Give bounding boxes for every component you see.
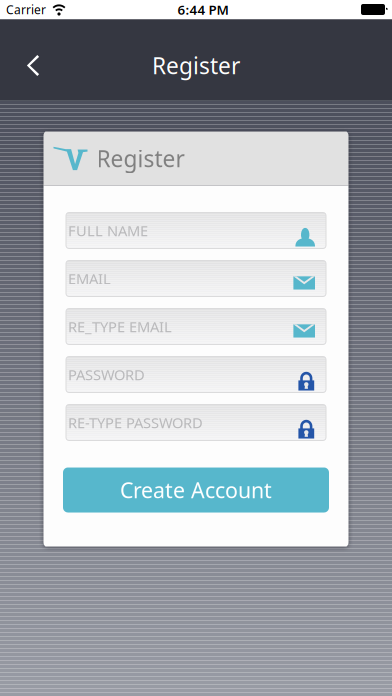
- staticText: EMAIL: [68, 269, 111, 288]
- button[interactable]: Back: [0, 43, 52, 87]
- staticText: Create Account: [120, 476, 272, 504]
- staticText: Register: [152, 50, 240, 80]
- staticText: Register: [96, 143, 184, 173]
- staticText: FULL NAME: [68, 221, 148, 240]
- staticText: RE_TYPE EMAIL: [68, 317, 172, 336]
- button[interactable]: RE-TYPE PASSWORD: [66, 404, 326, 440]
- button[interactable]: RE_TYPE EMAIL: [66, 308, 326, 344]
- staticText: Carrier: [6, 1, 46, 17]
- staticText: 6:44 PM: [177, 1, 228, 18]
- button[interactable]: EMAIL: [66, 260, 326, 296]
- button[interactable]: Create Account: [63, 467, 329, 512]
- staticText: RE-TYPE PASSWORD: [68, 413, 203, 432]
- button[interactable]: FULL NAME: [66, 212, 326, 248]
- staticText: PASSWORD: [68, 365, 145, 384]
- button[interactable]: PASSWORD: [66, 356, 326, 392]
